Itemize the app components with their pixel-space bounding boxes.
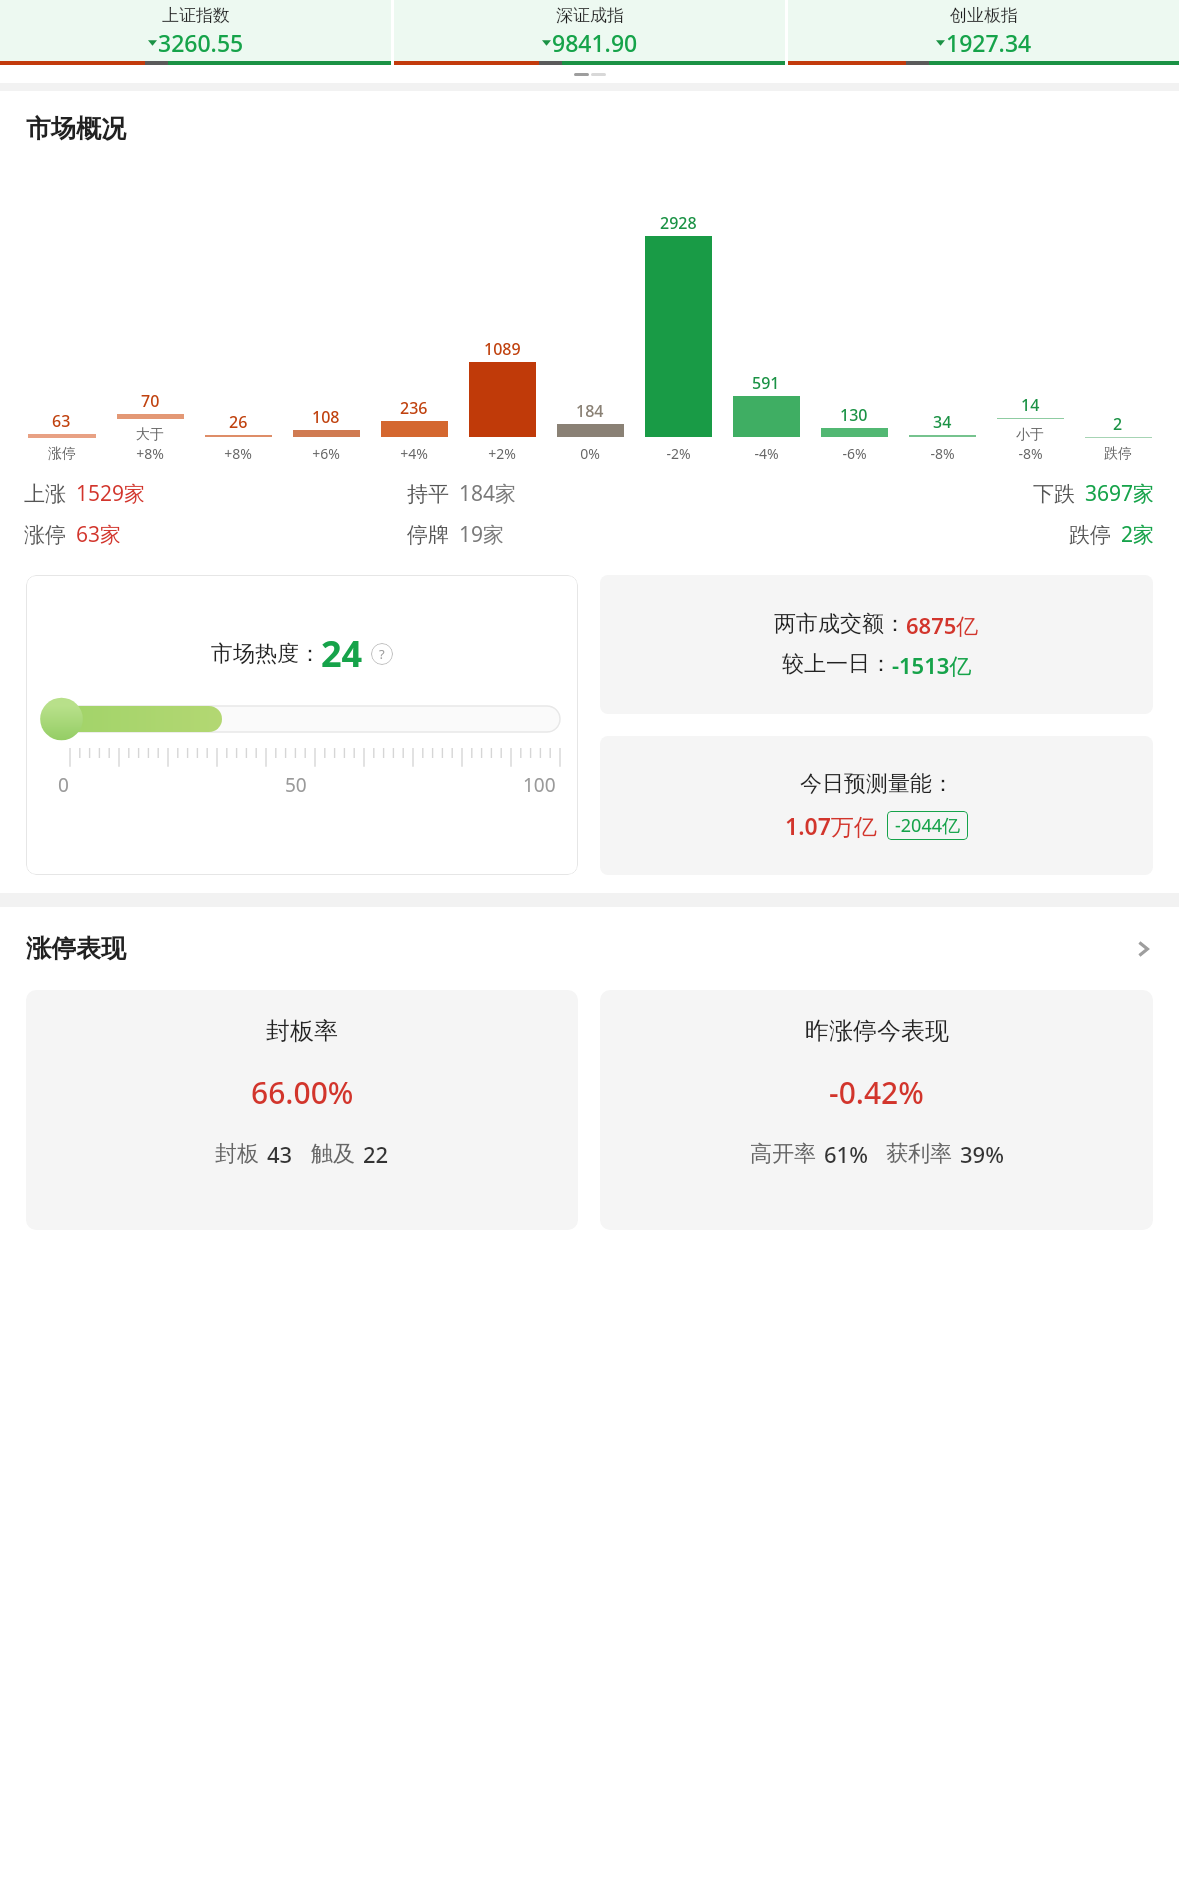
staticText: 较上一日： xyxy=(782,650,892,678)
staticText: 2家 xyxy=(1121,520,1155,549)
staticText: -8% xyxy=(1018,444,1043,463)
staticText: -5.58 xyxy=(800,59,835,65)
staticText: 停牌 xyxy=(407,522,449,548)
staticText: 184家 xyxy=(459,479,517,508)
staticText: 3697家 xyxy=(1085,479,1155,508)
staticText: 1927.34 xyxy=(946,27,1032,58)
staticText: -0.29% xyxy=(1119,59,1167,65)
staticText: 跌停 xyxy=(1104,445,1132,463)
staticText: ? xyxy=(379,645,385,663)
staticText: 两市成交额： xyxy=(774,610,906,638)
staticText: 封板率 xyxy=(266,1016,338,1046)
staticText: 43 xyxy=(267,1139,293,1169)
staticText: 涨停 xyxy=(48,445,76,463)
staticText: 上证指数 xyxy=(162,5,230,26)
staticText: 108 xyxy=(312,406,340,428)
staticText: 下跌 xyxy=(1033,481,1075,507)
staticText: 今日预测量能： xyxy=(800,770,954,798)
staticText: 1.07万亿 xyxy=(785,810,877,841)
staticText: 大于 xyxy=(136,426,164,444)
staticText: 昨涨停今表现 xyxy=(805,1016,949,1046)
staticText: -1513亿 xyxy=(892,650,972,680)
staticText: 130 xyxy=(840,404,868,426)
staticText: -0.43% xyxy=(725,59,773,65)
button[interactable]: 昨涨停今表现 xyxy=(600,990,1153,1230)
staticText: 591 xyxy=(752,372,780,394)
staticText: 获利率 xyxy=(886,1140,952,1168)
staticText: 24 xyxy=(321,629,363,678)
staticText: 66.00% xyxy=(251,1072,354,1113)
button[interactable]: 涨停表现 xyxy=(0,933,1179,964)
staticText: 63 xyxy=(52,410,71,432)
staticText: 14 xyxy=(1021,394,1040,416)
button[interactable]: 上证指数 xyxy=(0,0,391,65)
staticText: +6% xyxy=(312,444,340,463)
button[interactable]: 说明 xyxy=(371,643,393,665)
staticText: 市场概况 xyxy=(26,113,126,144)
staticText: 0% xyxy=(580,444,600,463)
staticText: 50 xyxy=(285,772,307,798)
staticText: 2928 xyxy=(660,212,697,234)
staticText: 61% xyxy=(824,1139,868,1169)
staticText: -2044亿 xyxy=(895,813,960,838)
staticText: 触及 xyxy=(311,1140,355,1168)
button[interactable]: 今日预测量能： xyxy=(600,736,1153,875)
staticText: 封板 xyxy=(215,1140,259,1168)
staticText: 小于 xyxy=(1016,426,1044,444)
button[interactable]: 深证成指 xyxy=(394,0,785,65)
staticText: 创业板指 xyxy=(950,5,1018,26)
staticText: +4% xyxy=(400,444,428,463)
staticText: 19家 xyxy=(459,520,505,549)
staticText: 涨停表现 xyxy=(26,933,126,964)
staticText: -2.26 xyxy=(12,59,47,65)
staticText: 3260.55 xyxy=(158,27,244,58)
staticText: 26 xyxy=(229,411,248,433)
staticText: 深证成指 xyxy=(556,5,624,26)
staticText: -6% xyxy=(842,444,867,463)
button[interactable]: 市场热度： xyxy=(26,575,578,875)
staticText: 22 xyxy=(363,1139,389,1169)
staticText: -2% xyxy=(666,444,691,463)
staticText: 跌停 xyxy=(1069,522,1111,548)
staticText: -0.42% xyxy=(829,1072,924,1113)
staticText: +8% xyxy=(224,444,252,463)
other: 更多 xyxy=(1133,939,1153,959)
staticText: 1089 xyxy=(484,338,521,360)
button[interactable]: 创业板指 xyxy=(788,0,1179,65)
staticText: 高开率 xyxy=(750,1140,816,1168)
staticText: 涨停 xyxy=(24,522,66,548)
button[interactable]: 封板率 xyxy=(26,990,578,1230)
staticText: 100 xyxy=(523,772,556,798)
staticText: 9841.90 xyxy=(552,27,638,58)
staticText: 6875亿 xyxy=(906,610,979,640)
staticText: 34 xyxy=(933,411,952,433)
staticText: -4% xyxy=(754,444,779,463)
staticText: 184 xyxy=(576,400,604,422)
staticText: 2 xyxy=(1113,413,1123,435)
staticText: 持平 xyxy=(407,481,449,507)
staticText: -0.07% xyxy=(331,59,379,65)
staticText: 70 xyxy=(141,390,160,412)
staticText: 63家 xyxy=(76,520,122,549)
button[interactable]: 两市成交额： xyxy=(600,575,1153,714)
staticText: 市场热度： xyxy=(211,640,321,668)
staticText: 0 xyxy=(58,772,69,798)
staticText: 236 xyxy=(400,397,428,419)
staticText: -42.4 xyxy=(406,59,441,65)
staticText: 39% xyxy=(960,1139,1004,1169)
staticText: -8% xyxy=(930,444,955,463)
staticText: +8% xyxy=(136,444,164,463)
staticText: 1529家 xyxy=(76,479,146,508)
staticText: 上涨 xyxy=(24,481,66,507)
staticText: +2% xyxy=(488,444,516,463)
